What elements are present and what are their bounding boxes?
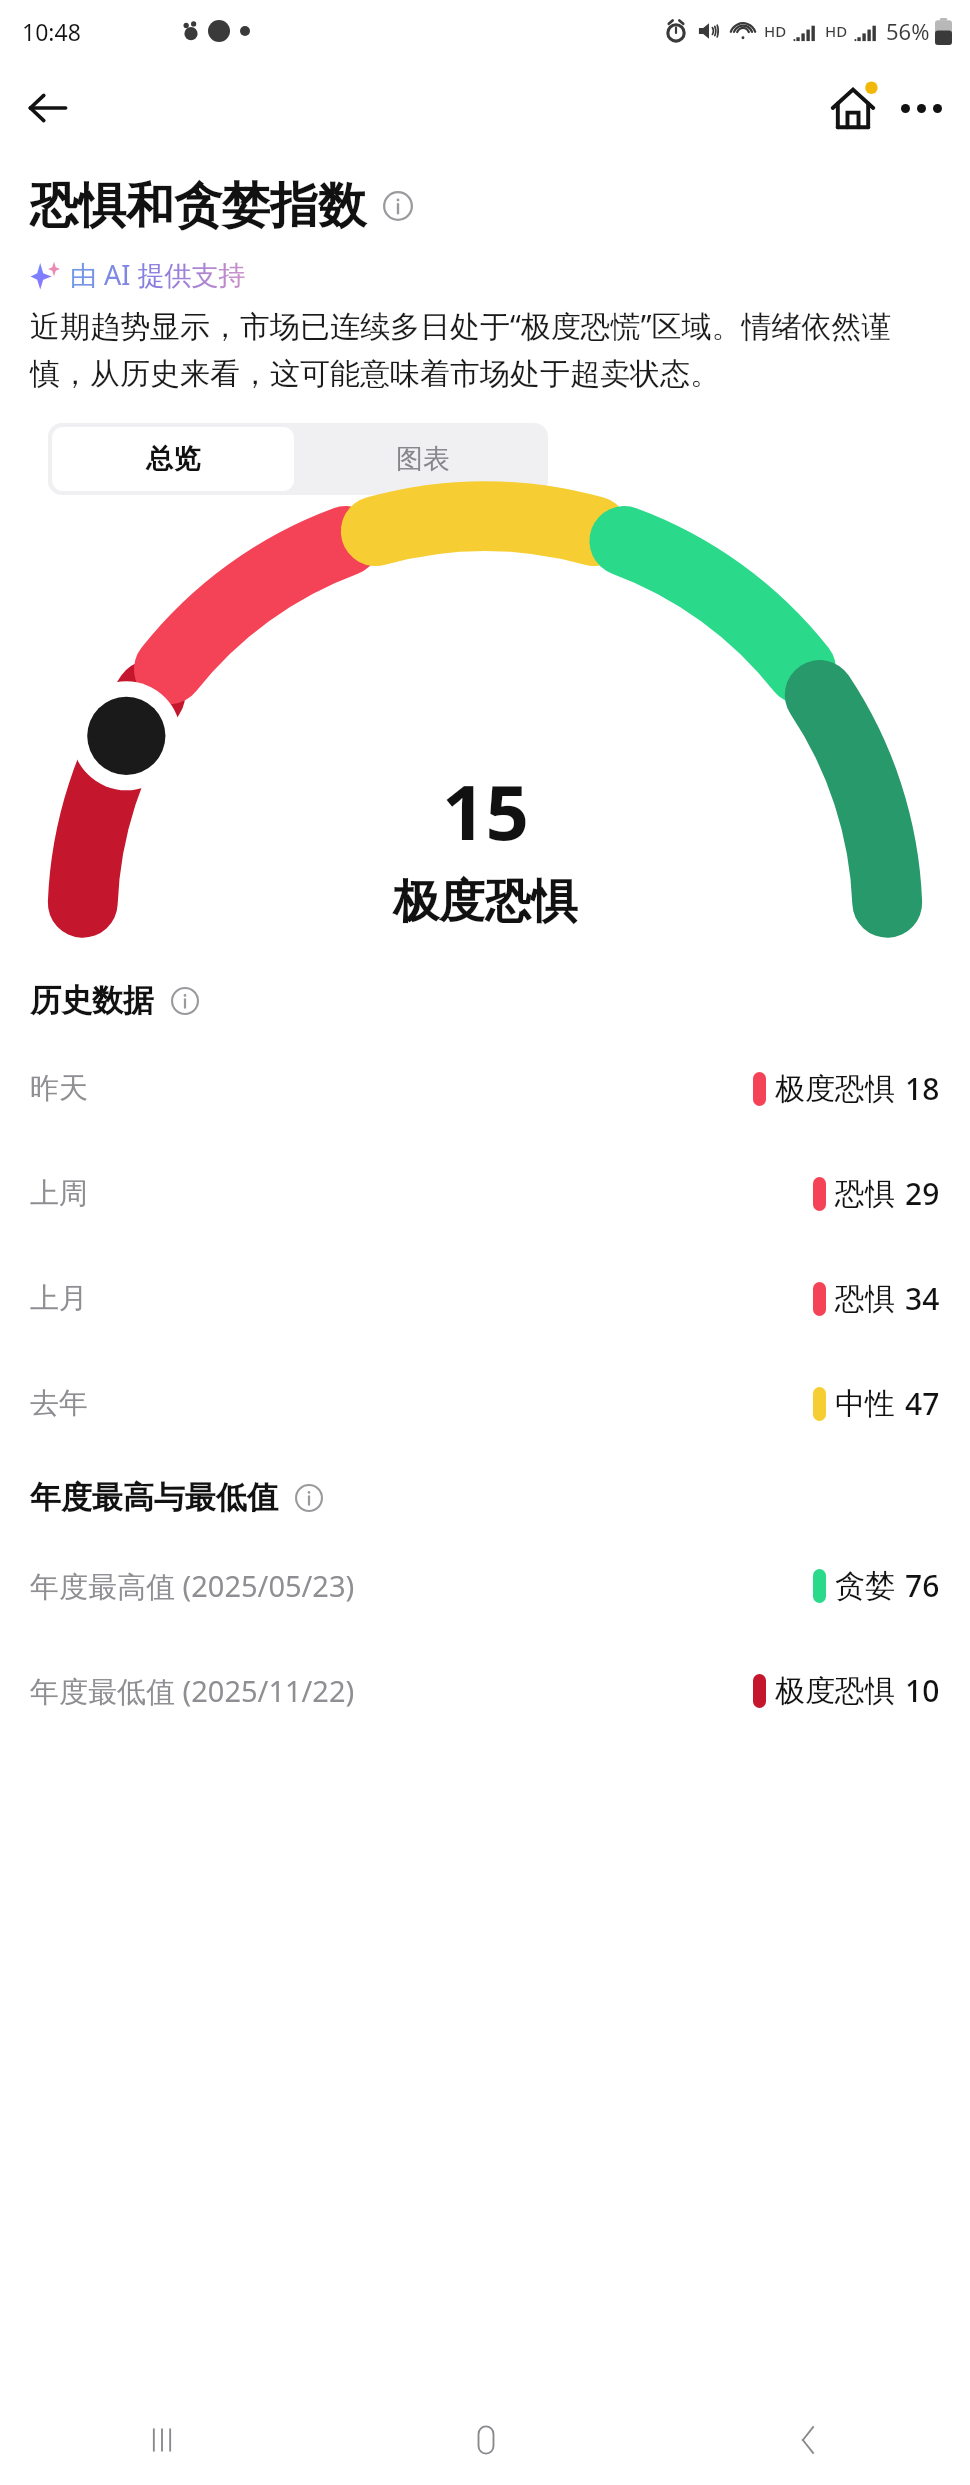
staticText: HD — [764, 21, 787, 41]
staticText: 76 — [905, 1565, 940, 1606]
staticText: HD — [825, 21, 848, 41]
staticText: 历史数据 — [30, 981, 154, 1020]
button[interactable]: 昨天 — [0, 1036, 970, 1141]
staticText: 极度恐惧 — [775, 1070, 895, 1108]
button[interactable]: 年度最高值 (2025/05/23) — [0, 1533, 970, 1638]
button[interactable]: Home — [822, 77, 884, 139]
button[interactable]: More options — [890, 77, 952, 139]
staticText: 恐惧 — [835, 1280, 895, 1318]
button[interactable]: Info — [380, 188, 416, 224]
staticText: 近期趋势显示，市场已连续多日处于“极度恐慌”区域。情绪依然谨慎，从历史来看，这可… — [30, 305, 940, 393]
staticText: 恐惧和贪婪指数 — [30, 176, 366, 236]
staticText: 18 — [905, 1068, 940, 1109]
staticText: 47 — [905, 1383, 940, 1424]
staticText: 中性 — [835, 1385, 895, 1423]
button[interactable]: Info — [168, 984, 202, 1018]
staticText: 10:48 — [22, 16, 81, 47]
staticText: 图表 — [396, 442, 450, 476]
staticText: 恐惧 — [835, 1175, 895, 1213]
staticText: 由 AI 提供支持 — [70, 256, 246, 293]
button[interactable]: 图表 — [298, 423, 548, 495]
button[interactable]: Back — [647, 2395, 970, 2485]
staticText: 上月 — [30, 1280, 88, 1317]
staticText: 年度最低值 (2025/11/22) — [30, 1671, 355, 1711]
button[interactable]: 年度最低值 (2025/11/22) — [0, 1638, 970, 1743]
staticText: 极度恐惧 — [393, 873, 577, 931]
staticText: 昨天 — [30, 1070, 88, 1107]
button[interactable]: 总览 — [52, 427, 294, 491]
button[interactable]: 上周 — [0, 1141, 970, 1246]
staticText: 年度最高与最低值 — [30, 1478, 278, 1517]
button[interactable]: Home — [324, 2395, 647, 2485]
staticText: 上周 — [30, 1175, 88, 1212]
staticText: 34 — [905, 1278, 940, 1319]
button[interactable]: 上月 — [0, 1246, 970, 1351]
button[interactable]: Recents — [0, 2395, 324, 2485]
staticText: 贪婪 — [835, 1567, 895, 1605]
button[interactable]: 去年 — [0, 1351, 970, 1456]
staticText: 29 — [905, 1173, 940, 1214]
staticText: 15 — [442, 759, 529, 863]
staticText: 56% — [886, 16, 930, 46]
staticText: 总览 — [146, 442, 200, 476]
button[interactable]: Info — [292, 1481, 326, 1515]
staticText: 10 — [905, 1670, 940, 1711]
staticText: 极度恐惧 — [775, 1672, 895, 1710]
staticText: 年度最高值 (2025/05/23) — [30, 1566, 355, 1606]
button[interactable]: Back — [20, 80, 76, 136]
staticText: 去年 — [30, 1385, 88, 1422]
